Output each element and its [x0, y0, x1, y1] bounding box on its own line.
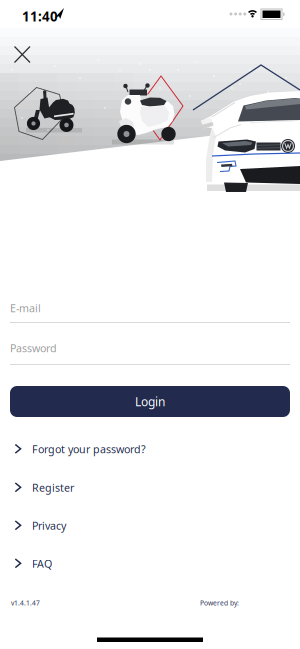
staticText: 11:40: [22, 7, 58, 25]
staticText: E-mail: [10, 301, 41, 315]
staticText: v1.4.1.47: [11, 598, 40, 607]
button[interactable]: FAQ: [14, 554, 52, 572]
button[interactable]: [14, 46, 31, 63]
staticText: Forgot your password?: [32, 442, 146, 456]
staticText: Password: [10, 341, 57, 355]
button[interactable]: Forgot your password?: [14, 440, 146, 458]
button[interactable]: Register: [14, 478, 74, 496]
staticText: Privacy: [32, 518, 66, 533]
staticText: Powered by:: [200, 598, 239, 607]
staticText: Register: [32, 480, 74, 495]
button[interactable]: Login: [10, 386, 290, 417]
staticText: Login: [135, 393, 165, 409]
staticText: FAQ: [32, 556, 52, 571]
button[interactable]: Privacy: [14, 516, 66, 534]
button[interactable]: Powered by:: [200, 598, 239, 607]
